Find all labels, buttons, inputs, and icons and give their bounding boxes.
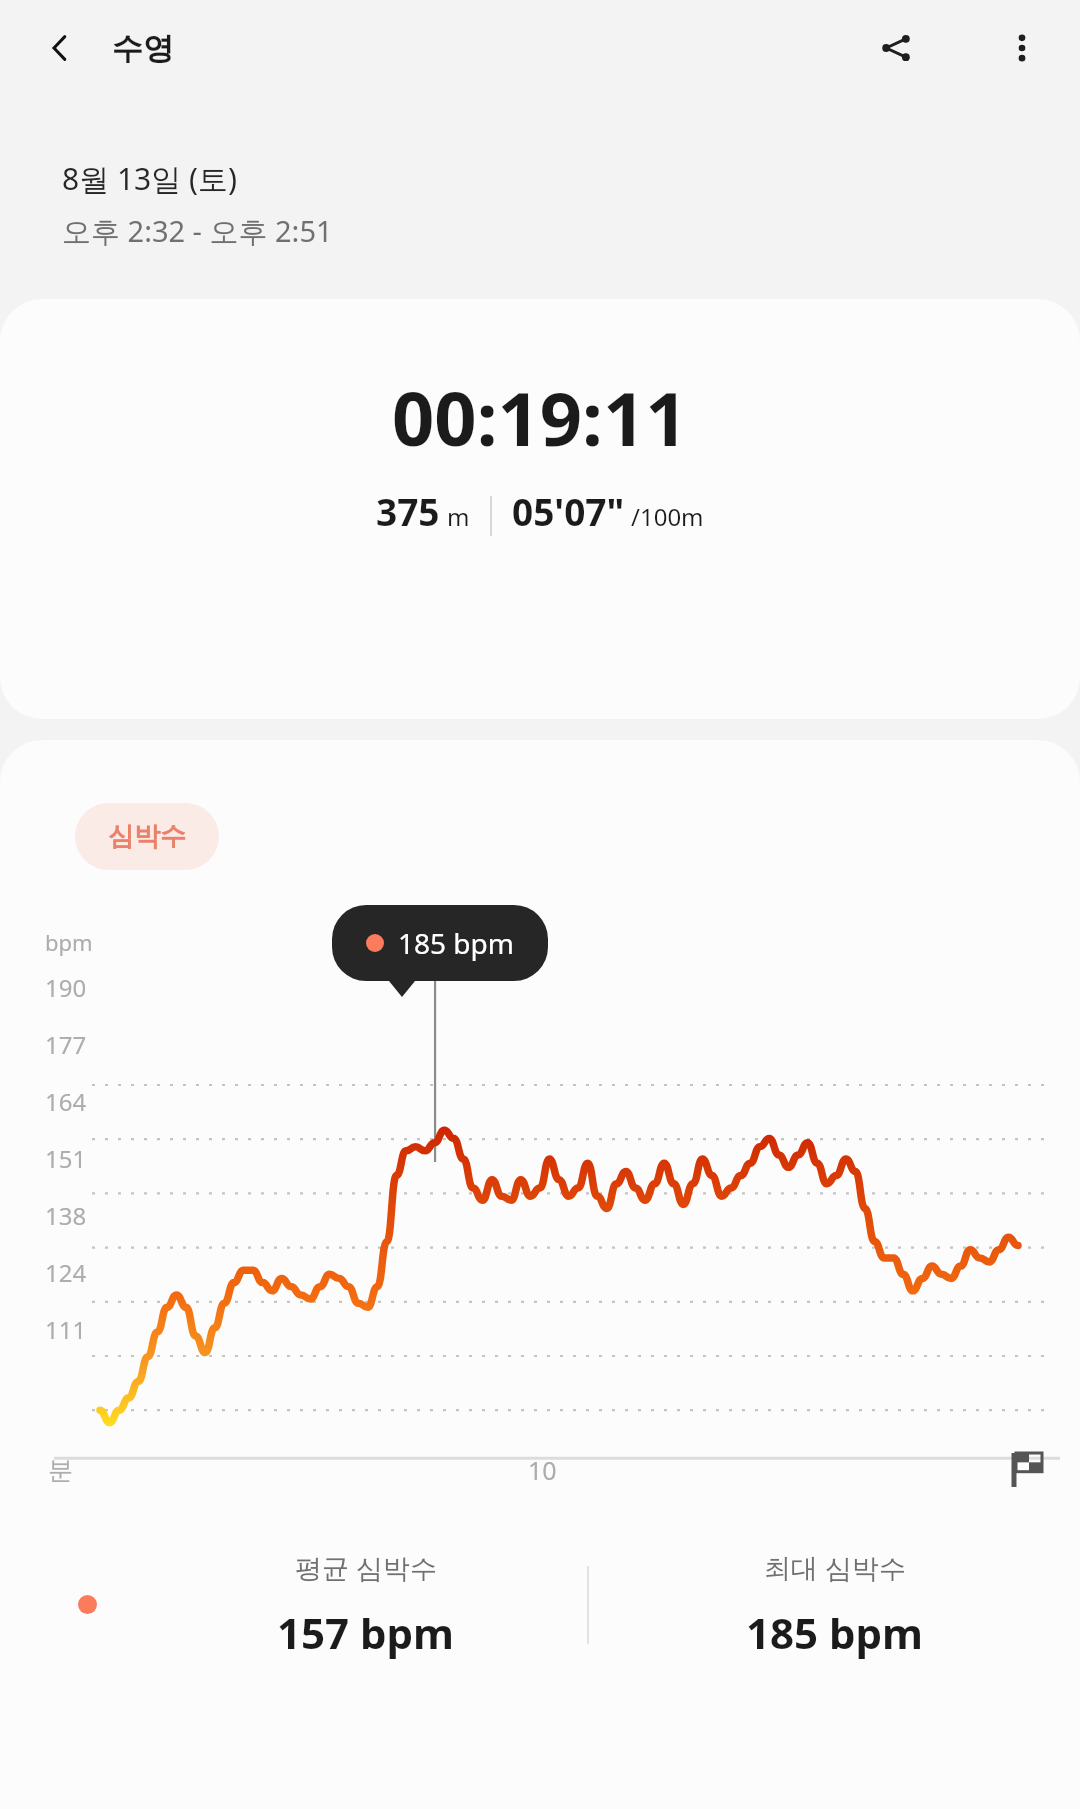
- button[interactable]: Back: [26, 14, 94, 82]
- staticText: 심박수: [108, 820, 186, 853]
- staticText: 05'07": [512, 486, 625, 536]
- button[interactable]: 00:19:11: [0, 299, 1080, 719]
- staticText: /100m: [631, 500, 704, 533]
- staticText: 151: [45, 1142, 87, 1175]
- staticText: 수영: [112, 29, 174, 68]
- staticText: bpm: [45, 927, 93, 957]
- staticText: 평균 심박수: [295, 1549, 438, 1586]
- button[interactable]: 평균 심박수: [97, 1517, 587, 1692]
- staticText: 8월 13일 (토): [62, 158, 238, 199]
- button[interactable]: 최대 심박수: [589, 1517, 1080, 1692]
- staticText: 분: [48, 1455, 73, 1486]
- staticText: 138: [45, 1199, 87, 1232]
- button[interactable]: More options: [986, 12, 1058, 84]
- staticText: 111: [45, 1313, 87, 1346]
- button[interactable]: Share: [860, 12, 932, 84]
- staticText: 최대 심박수: [764, 1549, 907, 1586]
- staticText: 오후 2:32 - 오후 2:51: [62, 211, 333, 251]
- staticText: m: [447, 500, 470, 533]
- staticText: 177: [45, 1028, 87, 1061]
- staticText: 375: [376, 486, 440, 536]
- staticText: 185 bpm: [398, 924, 514, 962]
- button[interactable]: 심박수: [75, 803, 219, 870]
- staticText: 124: [45, 1256, 87, 1289]
- staticText: 10: [528, 1453, 557, 1487]
- staticText: 157 bpm: [277, 1604, 455, 1661]
- staticText: 185 bpm: [746, 1604, 924, 1661]
- staticText: 190: [45, 971, 87, 1004]
- staticText: 164: [45, 1085, 87, 1118]
- staticText: 00:19:11: [392, 367, 688, 468]
